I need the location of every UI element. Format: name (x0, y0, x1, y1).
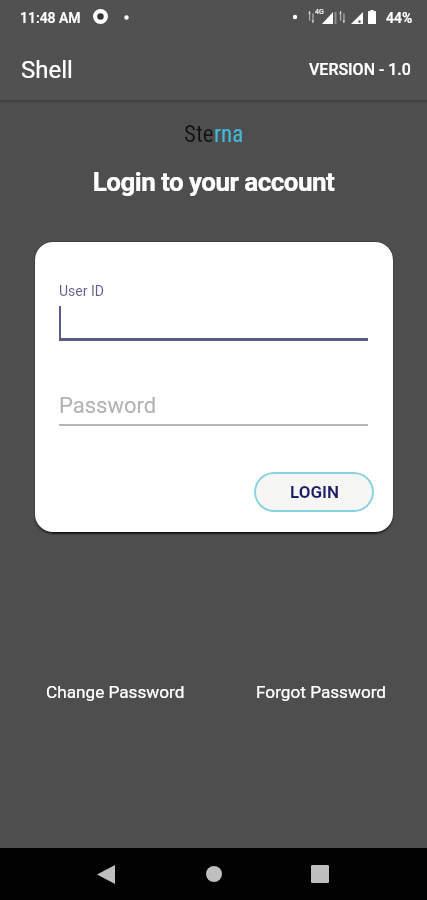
button[interactable]: LOGIN (254, 472, 374, 512)
staticText: 44% (386, 10, 413, 26)
button[interactable]: Change Password (44, 678, 187, 706)
staticText: Ste (184, 121, 214, 148)
staticText: 4G (315, 8, 324, 16)
staticText: Forgot Password (256, 682, 387, 702)
staticText: LOGIN (290, 482, 339, 502)
staticText: rna (214, 121, 244, 148)
button[interactable]: Recent apps (296, 850, 344, 898)
staticText: Change Password (46, 682, 185, 702)
staticText: Password (59, 393, 157, 419)
staticText: VERSION - 1.0 (309, 60, 411, 79)
staticText: 11:48 AM (20, 10, 81, 26)
button[interactable]: Back (82, 850, 130, 898)
staticText: Shell (21, 56, 73, 84)
staticText: Login to your account (0, 167, 427, 197)
button[interactable]: Forgot Password (254, 678, 389, 706)
staticText: User ID (59, 283, 104, 299)
button[interactable]: Home (190, 850, 238, 898)
